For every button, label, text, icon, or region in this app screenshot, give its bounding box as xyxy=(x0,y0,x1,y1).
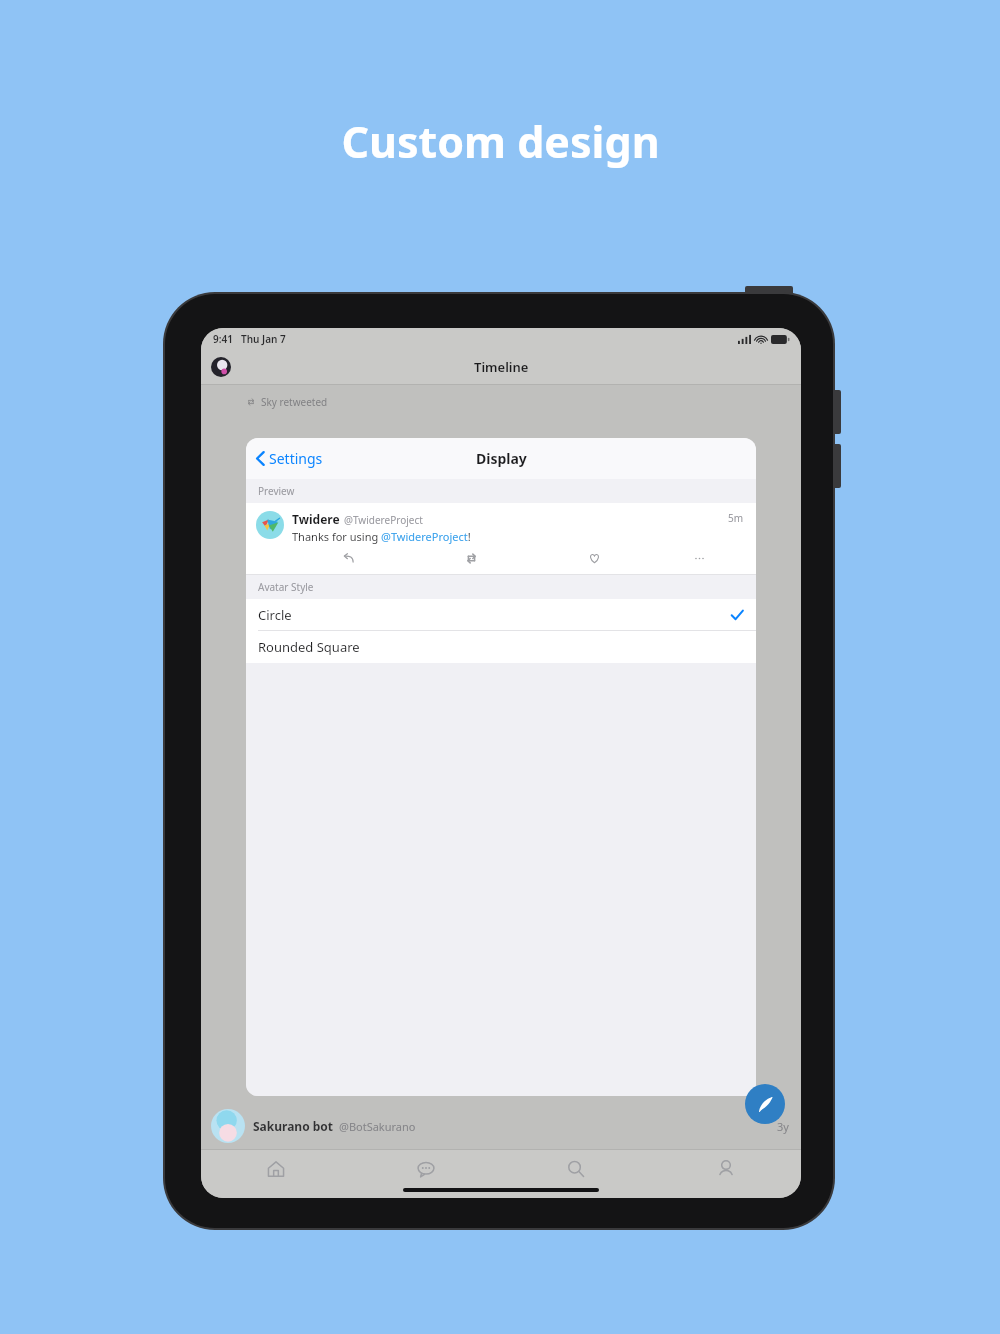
button[interactable]: Compose xyxy=(745,1084,785,1124)
button[interactable]: Home xyxy=(201,1150,351,1188)
button[interactable]: Circle xyxy=(246,599,756,631)
button[interactable]: Reply xyxy=(286,550,410,566)
button[interactable]: Retweet xyxy=(410,550,533,566)
staticText: Thanks for using @TwidereProject! xyxy=(292,529,471,544)
staticText: Custom design xyxy=(341,112,660,171)
staticText: @TwidereProject xyxy=(344,513,423,527)
staticText: Thu Jan 7 xyxy=(241,332,286,346)
staticText: Display xyxy=(476,449,527,468)
button[interactable]: Twidere xyxy=(246,503,756,575)
staticText: Avatar Style xyxy=(258,580,314,594)
staticText: Timeline xyxy=(474,358,529,376)
staticText: Circle xyxy=(258,606,292,624)
staticText: Rounded Square xyxy=(258,638,360,656)
staticText: 3y xyxy=(777,1119,789,1134)
button[interactable]: Rounded Square xyxy=(246,631,756,663)
staticText: 5m xyxy=(728,511,744,525)
button[interactable]: Account xyxy=(211,357,231,377)
button[interactable]: Settings xyxy=(256,449,323,468)
button[interactable]: Sakurano bot xyxy=(211,1109,789,1143)
staticText: @BotSakurano xyxy=(339,1119,416,1134)
staticText: Preview xyxy=(258,484,295,498)
staticText: Sky retweeted xyxy=(261,395,328,409)
button[interactable]: Search xyxy=(501,1150,651,1188)
button[interactable]: Profile xyxy=(651,1150,801,1188)
staticText: Sakurano bot xyxy=(253,1118,334,1134)
button[interactable]: Messages xyxy=(351,1150,501,1188)
staticText: 9:41 xyxy=(213,332,233,346)
staticText: Settings xyxy=(269,449,323,468)
button[interactable]: Like xyxy=(533,550,656,566)
staticText: Twidere xyxy=(292,511,340,527)
button[interactable]: More xyxy=(656,550,742,566)
